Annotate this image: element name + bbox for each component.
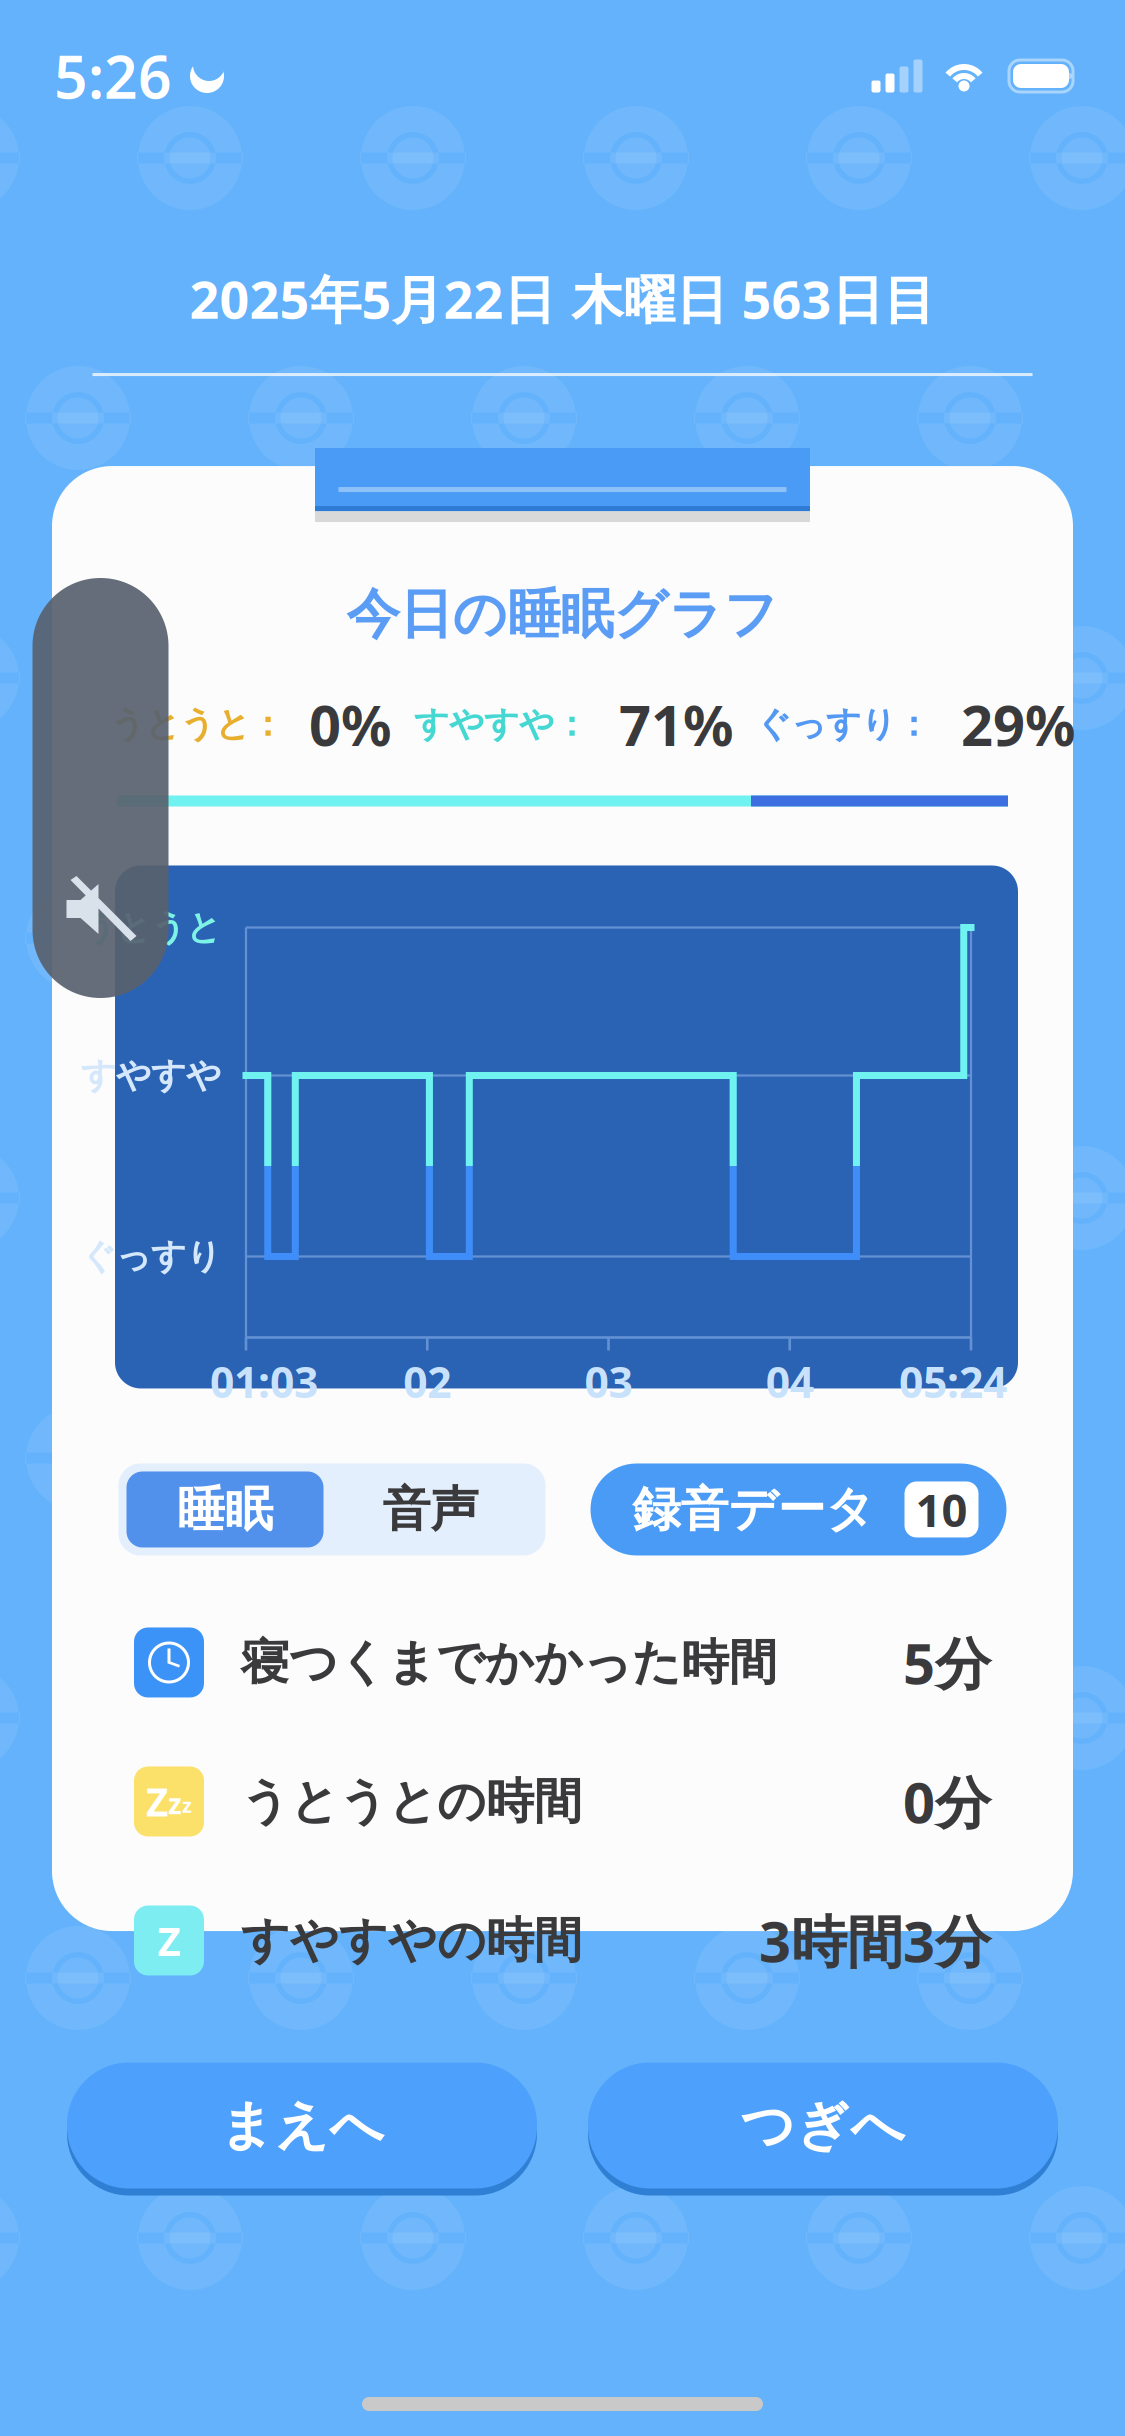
staticText: 10 xyxy=(915,1479,967,1540)
staticText: 02 xyxy=(403,1353,451,1410)
staticText: 5分 xyxy=(903,1625,991,1700)
staticText: すやすやの時間 xyxy=(241,1911,582,1970)
staticText: Z xyxy=(157,1914,180,1967)
staticText: すやすや： xyxy=(414,703,589,746)
staticText: 音声 xyxy=(382,1480,478,1539)
staticText: うとうとの時間 xyxy=(241,1772,582,1831)
staticText: z xyxy=(168,1785,182,1822)
staticText: Z xyxy=(146,1776,168,1827)
staticText: うとうと： xyxy=(110,703,285,746)
button[interactable]: つぎへ xyxy=(588,2059,1058,2192)
button[interactable]: 録音データ xyxy=(590,1463,1006,1555)
staticText: 71% xyxy=(619,687,734,761)
staticText: 寝つくまでかかった時間 xyxy=(241,1633,777,1692)
staticText: z xyxy=(182,1792,192,1818)
staticText: つぎへ xyxy=(740,2093,905,2158)
staticText: ぐっすり xyxy=(81,1235,221,1278)
staticText: すやすや xyxy=(81,1054,221,1097)
staticText: 05:24 xyxy=(899,1353,1007,1410)
staticText: 5:26 xyxy=(54,37,172,115)
staticText: 01:03 xyxy=(210,1353,318,1410)
button[interactable]: 睡眠 xyxy=(126,1471,323,1547)
staticText: 0% xyxy=(309,687,392,761)
staticText: まえへ xyxy=(219,2093,384,2158)
staticText: うとうと xyxy=(81,906,221,949)
staticText: 29% xyxy=(961,687,1076,761)
staticText: 0分 xyxy=(903,1764,991,1839)
staticText: 録音データ xyxy=(632,1480,874,1539)
staticText: ぐっすり： xyxy=(756,703,931,746)
staticText: 3時間3分 xyxy=(759,1903,991,1978)
button[interactable]: 音声 xyxy=(323,1471,537,1547)
staticText: 03 xyxy=(584,1353,632,1410)
staticText: 2025年5月22日 木曜日 563日目 xyxy=(189,264,935,333)
staticText: 睡眠 xyxy=(177,1480,273,1539)
staticText: 今日の睡眠グラフ xyxy=(346,582,778,647)
button[interactable]: まえへ xyxy=(67,2059,537,2192)
staticText: 04 xyxy=(766,1353,814,1410)
